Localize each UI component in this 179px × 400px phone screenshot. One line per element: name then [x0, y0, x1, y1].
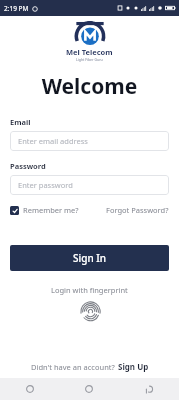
button[interactable]: Home: [59, 378, 119, 400]
staticText: Light Fiber Guru: [76, 57, 103, 62]
staticText: Welcome: [0, 72, 179, 101]
staticText: Mel Telecom: [66, 47, 113, 57]
button[interactable]: Remember me?: [10, 205, 79, 215]
button[interactable]: Enter password: [10, 175, 169, 195]
staticText: Password: [10, 161, 46, 171]
button[interactable]: Login with fingerprint: [78, 299, 102, 323]
staticText: 2:19 PM: [4, 4, 29, 13]
button[interactable]: Back: [119, 378, 179, 400]
staticText: Login with fingerprint: [51, 285, 128, 295]
staticText: Remember me?: [23, 205, 79, 215]
staticText: Forgot Password?: [106, 205, 169, 215]
button[interactable]: Sign Up: [118, 361, 149, 372]
staticText: Email: [10, 117, 31, 127]
staticText: Enter email address: [18, 136, 88, 146]
staticText: Sign Up: [118, 361, 149, 372]
button[interactable]: Sign In: [10, 245, 169, 271]
button[interactable]: Forgot Password?: [106, 205, 169, 215]
staticText: Enter password: [18, 180, 73, 190]
button[interactable]: Enter email address: [10, 131, 169, 151]
button[interactable]: Recents: [0, 378, 59, 400]
staticText: Sign In: [73, 251, 107, 265]
staticText: Didn't have an account?: [31, 362, 115, 372]
